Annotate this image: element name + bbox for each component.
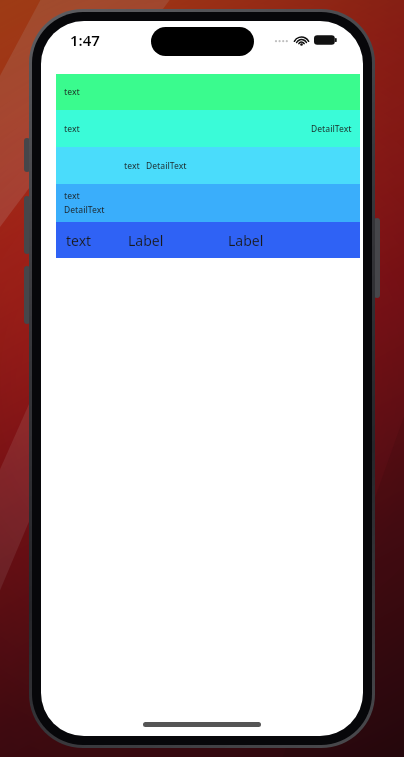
staticText: Label xyxy=(228,231,264,250)
staticText: text xyxy=(64,190,80,202)
staticText: text xyxy=(64,86,80,98)
button[interactable]: text xyxy=(56,222,360,258)
staticText: DetailText xyxy=(146,160,187,172)
button[interactable]: text xyxy=(56,110,360,147)
staticText: DetailText xyxy=(64,204,105,216)
button[interactable]: text xyxy=(56,74,360,110)
staticText: 1:47 xyxy=(70,30,100,50)
other: Home xyxy=(143,722,261,727)
staticText: DetailText xyxy=(311,123,352,135)
staticText: text xyxy=(66,231,128,250)
button[interactable]: text xyxy=(56,147,360,184)
staticText: text xyxy=(124,160,140,172)
button[interactable]: text xyxy=(56,184,360,222)
staticText: text xyxy=(64,123,80,135)
staticText: Label xyxy=(128,231,228,250)
